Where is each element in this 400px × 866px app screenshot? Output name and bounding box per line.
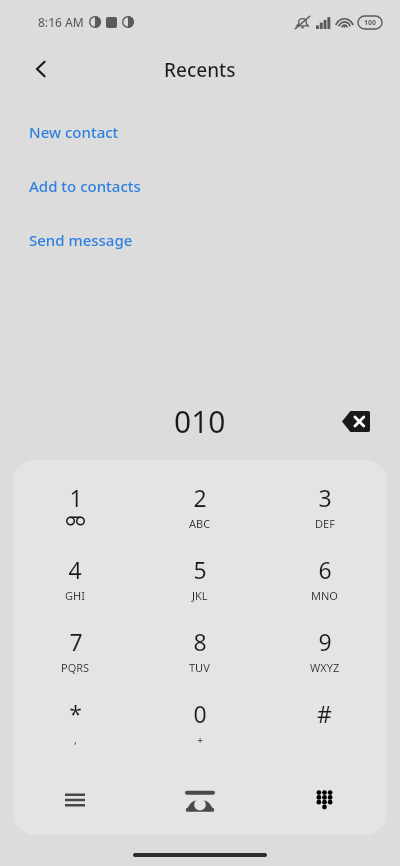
staticText: PQRS (61, 660, 90, 675)
button[interactable]: 4 (13, 550, 137, 622)
button[interactable]: 6 (262, 550, 387, 622)
button[interactable]: 0 (137, 694, 262, 766)
staticText: ABC (189, 516, 211, 531)
staticText: # (317, 698, 332, 729)
button[interactable]: Call (137, 766, 262, 834)
button[interactable]: * (13, 694, 137, 766)
button[interactable]: Send message (29, 230, 133, 250)
staticText: 2 (193, 482, 207, 513)
button[interactable]: Delete (336, 401, 376, 441)
button[interactable]: 1 (13, 478, 137, 550)
staticText: 7 (69, 626, 83, 657)
staticText: 8 (193, 626, 207, 657)
staticText: 1 (69, 482, 83, 513)
staticText: Recents (164, 57, 236, 83)
staticText: * (69, 698, 82, 729)
button[interactable]: Keypad (262, 766, 387, 834)
staticText: , (74, 732, 77, 747)
button[interactable]: # (262, 694, 387, 766)
staticText: New contact (29, 122, 119, 142)
staticText: 8:16 AM (38, 14, 84, 30)
staticText: 0 (193, 698, 207, 729)
staticText: 4 (68, 554, 82, 585)
button[interactable]: Back (22, 50, 60, 88)
button[interactable]: Add to contacts (29, 176, 141, 196)
staticText: 3 (318, 482, 332, 513)
button[interactable]: 2 (137, 478, 262, 550)
button[interactable]: 5 (137, 550, 262, 622)
staticText: + (197, 732, 204, 747)
staticText: Add to contacts (29, 176, 141, 196)
button[interactable]: 7 (13, 622, 137, 694)
button[interactable]: Call log (13, 766, 137, 834)
button[interactable]: 3 (262, 478, 387, 550)
staticText: MNO (311, 588, 338, 603)
button[interactable]: 8 (137, 622, 262, 694)
staticText: WXYZ (310, 660, 340, 675)
staticText: TUV (189, 660, 210, 675)
staticText: DEF (315, 516, 335, 531)
staticText: 9 (318, 626, 332, 657)
staticText: 6 (318, 554, 332, 585)
staticText: GHI (65, 588, 85, 603)
staticText: JKL (192, 588, 208, 603)
staticText: 010 (174, 401, 226, 442)
staticText: Send message (29, 230, 133, 250)
button[interactable]: 9 (262, 622, 387, 694)
button[interactable]: New contact (29, 122, 119, 142)
staticText: 100 (364, 18, 377, 28)
staticText: 5 (193, 554, 207, 585)
